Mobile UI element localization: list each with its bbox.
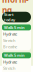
- staticText: Breathe: [3, 44, 17, 49]
- button[interactable]: Walk 5 min: [2, 52, 31, 58]
- staticText: Walk 5 min: [4, 25, 25, 30]
- staticText: let's move: [2, 15, 21, 21]
- button[interactable]: Walk 5 min: [2, 24, 31, 30]
- staticText: Hydrate: [3, 59, 17, 65]
- staticText: morning: [2, 0, 29, 15]
- staticText: Walk 5 min: [4, 53, 25, 58]
- staticText: Start today: [4, 12, 15, 22]
- button[interactable]: Start today: [2, 12, 31, 22]
- staticText: Hydrate: [3, 31, 17, 37]
- staticText: Stretch: [3, 38, 15, 43]
- staticText: Stretch: [3, 66, 15, 71]
